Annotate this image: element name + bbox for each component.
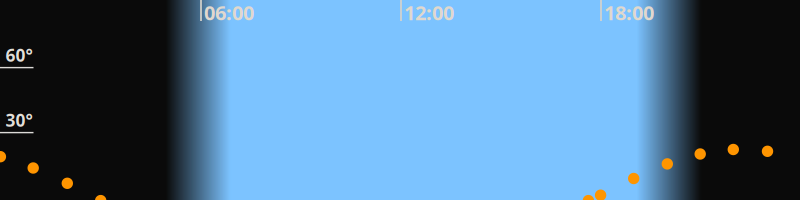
staticText: 60°	[5, 44, 32, 67]
staticText: 18:00	[604, 0, 654, 26]
staticText: 06:00	[204, 0, 254, 26]
staticText: 30°	[5, 109, 32, 132]
staticText: 12:00	[404, 0, 454, 26]
